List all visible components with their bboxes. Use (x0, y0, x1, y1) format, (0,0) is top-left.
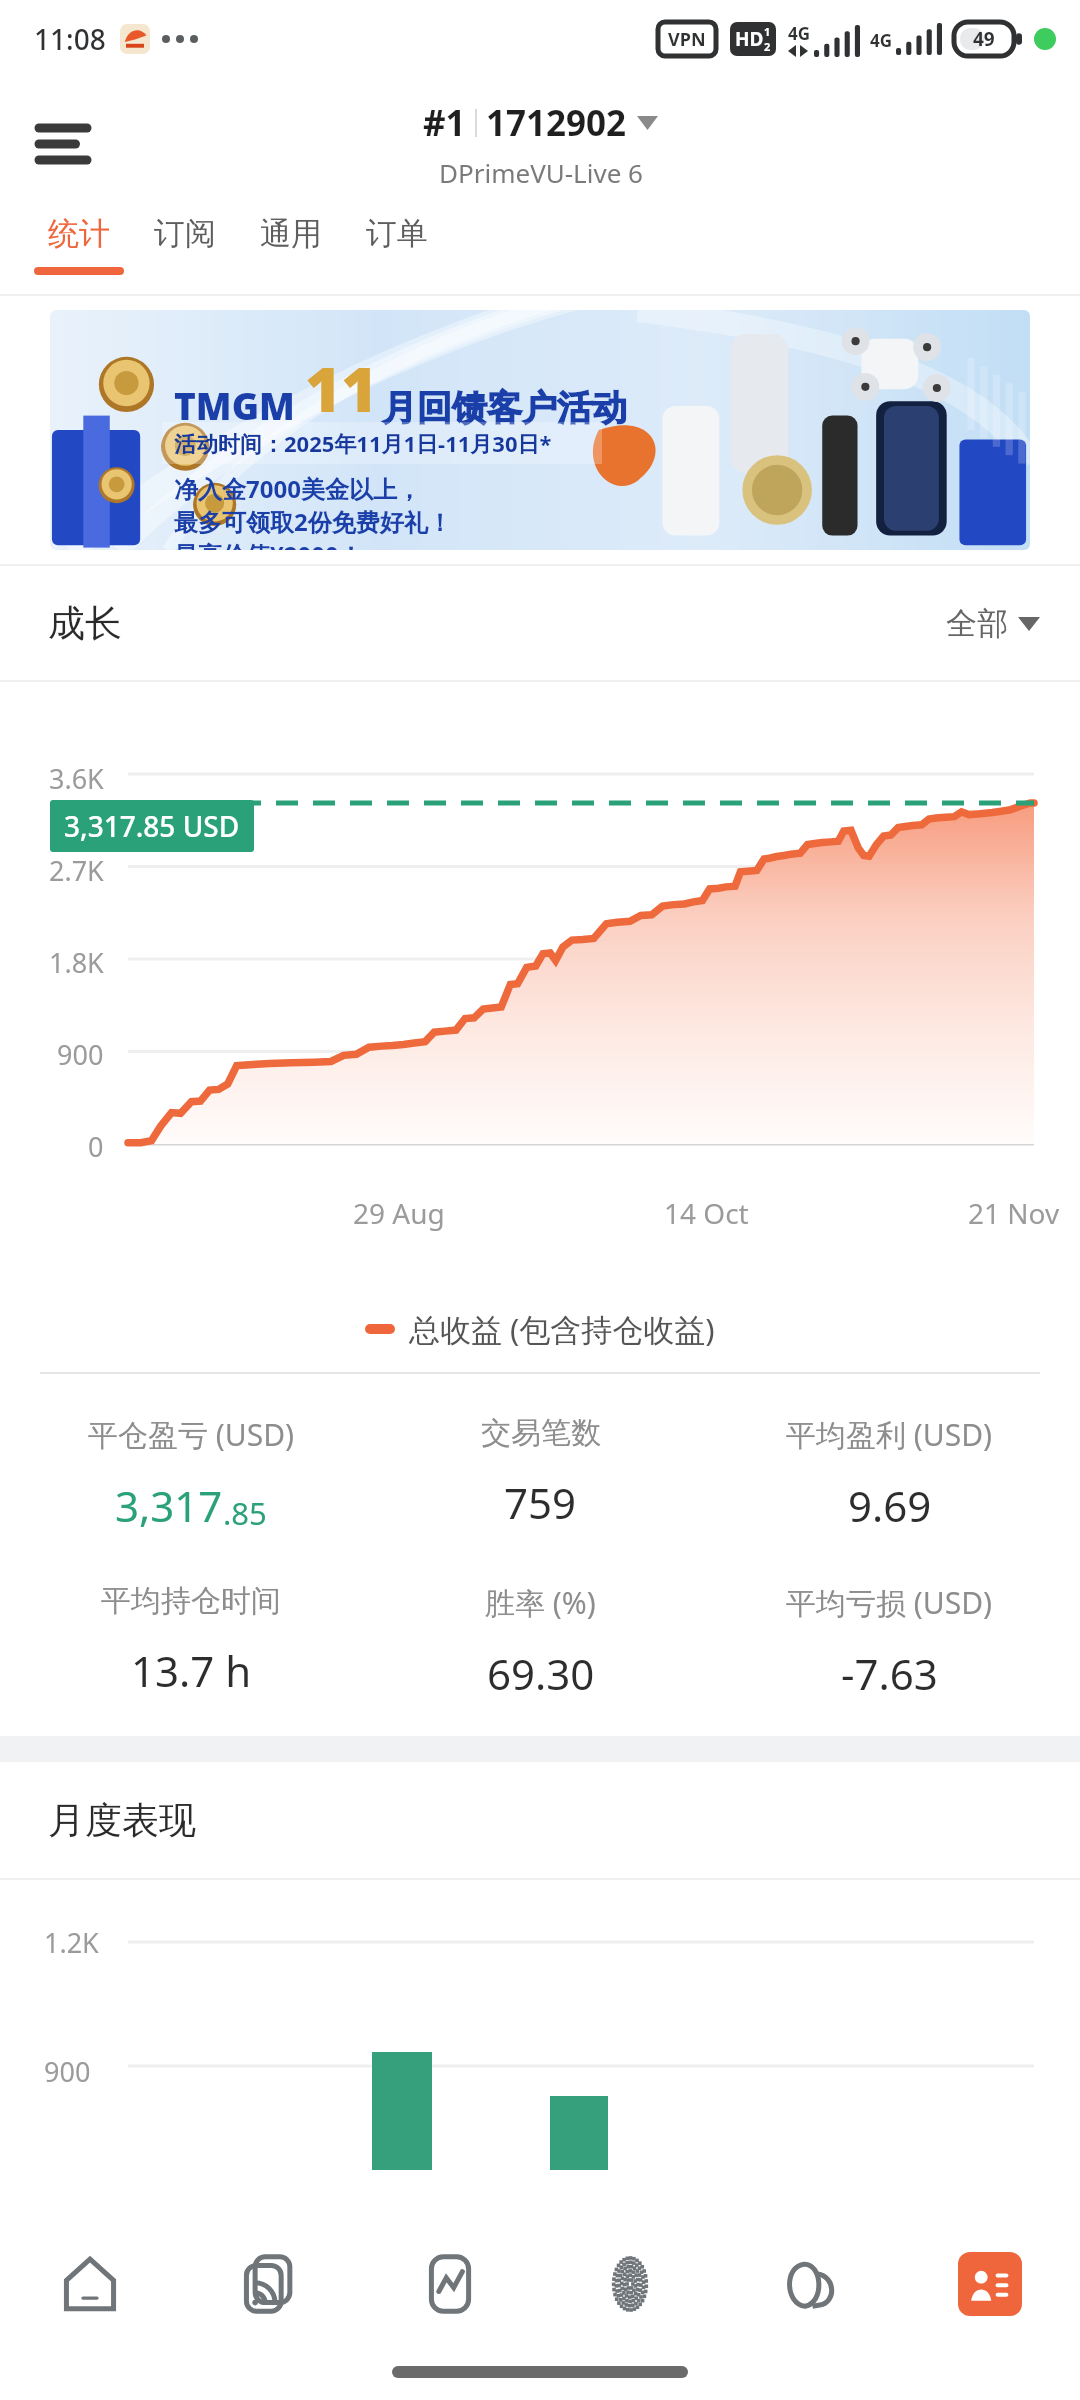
staticText: 1.8K (49, 944, 104, 974)
staticText: 11 (305, 346, 378, 430)
button[interactable]: Copy trading (180, 2224, 360, 2344)
button[interactable]: 全部 (946, 604, 1040, 643)
staticText: 69.30 (487, 1645, 595, 1702)
staticText: 订阅 (154, 214, 216, 253)
staticText: 订单 (366, 214, 428, 253)
staticText: 900 (57, 1036, 104, 1066)
button[interactable]: Statistics (360, 2224, 540, 2344)
staticText: 3,317 (115, 1477, 223, 1534)
staticText: -7.63 (841, 1645, 938, 1702)
staticText: 4G (788, 22, 811, 45)
button[interactable]: 通用 (238, 210, 344, 294)
staticText: 平均持仓时间 (101, 1582, 281, 1620)
staticText: 1712902 (486, 99, 627, 147)
staticText: 平均亏损 (USD) (786, 1582, 993, 1623)
staticText: 759 (504, 1474, 577, 1531)
staticText: TMGM (174, 380, 295, 430)
button[interactable]: 订阅 (132, 210, 238, 294)
staticText: 3,317.85 USD (64, 807, 240, 845)
button[interactable]: 统计 (26, 210, 132, 294)
staticText: 平仓盈亏 (USD) (88, 1414, 295, 1455)
button[interactable]: Discover (540, 2224, 720, 2344)
staticText: 最高价值¥2000！ (174, 538, 363, 550)
staticText: 全部 (946, 604, 1008, 643)
staticText: 2 (764, 39, 771, 54)
staticText: 最多可领取2份免费好礼！ (174, 505, 452, 538)
staticText: 1 (764, 24, 771, 39)
staticText: 平均盈利 (USD) (786, 1414, 993, 1455)
staticText: #1 (423, 99, 466, 147)
button[interactable]: TMGM (50, 310, 1030, 550)
button[interactable]: #1 (423, 99, 658, 190)
staticText: 胜率 (%) (485, 1582, 596, 1623)
staticText: 9.69 (848, 1477, 932, 1534)
button[interactable]: Menu (20, 101, 106, 187)
staticText: 29 Aug (353, 1194, 445, 1232)
staticText: 4G (870, 29, 893, 52)
staticText: 月回馈客户活动 (382, 386, 627, 430)
staticText: 11:08 (34, 20, 106, 58)
staticText: 统计 (48, 214, 110, 253)
staticText: 3.6K (49, 760, 104, 790)
staticText: 通用 (260, 214, 322, 253)
button[interactable]: Profile (900, 2224, 1080, 2344)
staticText: 14 Oct (664, 1194, 749, 1232)
staticText: .85 (223, 1492, 267, 1534)
staticText: 总收益 (包含持仓收益) (409, 1308, 715, 1350)
button[interactable]: Home (0, 2224, 180, 2344)
button[interactable]: Chat (720, 2224, 900, 2344)
staticText: 净入金7000美金以上， (174, 472, 421, 505)
staticText: 0 (88, 1128, 104, 1158)
staticText: 1.2K (44, 1924, 99, 1961)
staticText: 49 (973, 26, 995, 52)
staticText: HD (735, 26, 764, 52)
staticText: DPrimeVU-Live 6 (439, 155, 643, 190)
staticText: 2.7K (49, 852, 104, 882)
button[interactable]: 订单 (344, 210, 450, 294)
staticText: 交易笔数 (481, 1414, 601, 1452)
staticText: VPN (668, 27, 706, 52)
staticText: 21 Nov (968, 1194, 1060, 1232)
staticText: 活动时间：2025年11月1日-11月30日* (174, 428, 552, 458)
staticText: 月度表现 (48, 1797, 196, 1844)
staticText: 13.7 h (131, 1642, 252, 1699)
staticText: 成长 (48, 600, 122, 647)
staticText: 900 (44, 2053, 91, 2090)
